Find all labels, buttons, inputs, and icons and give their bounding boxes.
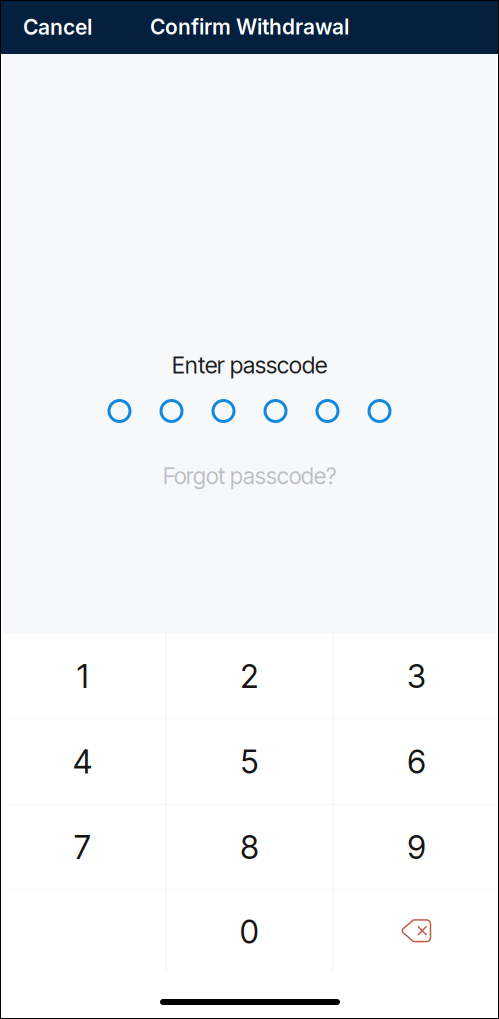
staticText: 0 <box>240 912 259 951</box>
button[interactable]: Forgot passcode? <box>0 463 499 489</box>
staticText: Confirm Withdrawal <box>150 14 349 40</box>
button[interactable]: 7 <box>0 805 165 889</box>
button[interactable]: Cancel <box>0 0 113 54</box>
button[interactable]: 0 <box>166 890 332 975</box>
staticText: 5 <box>240 742 258 781</box>
button[interactable]: 3 <box>333 634 499 718</box>
button[interactable]: 9 <box>333 805 499 889</box>
staticText: 6 <box>407 742 425 781</box>
button[interactable]: 6 <box>333 719 499 804</box>
staticText: 9 <box>407 828 425 867</box>
staticText: 8 <box>240 828 258 867</box>
staticText: 7 <box>74 828 91 867</box>
button[interactable]: Delete <box>333 890 499 975</box>
button[interactable]: 8 <box>166 805 332 889</box>
button[interactable]: 1 <box>0 634 165 718</box>
staticText: 2 <box>240 657 258 696</box>
staticText: Enter passcode <box>172 351 327 379</box>
staticText: Cancel <box>23 14 92 40</box>
staticText: 4 <box>73 742 92 781</box>
staticText: 3 <box>407 657 426 696</box>
button[interactable]: 4 <box>0 719 165 804</box>
button[interactable]: 2 <box>166 634 332 718</box>
staticText: 1 <box>77 657 88 696</box>
button[interactable]: 5 <box>166 719 332 804</box>
staticText: Forgot passcode? <box>163 462 336 490</box>
